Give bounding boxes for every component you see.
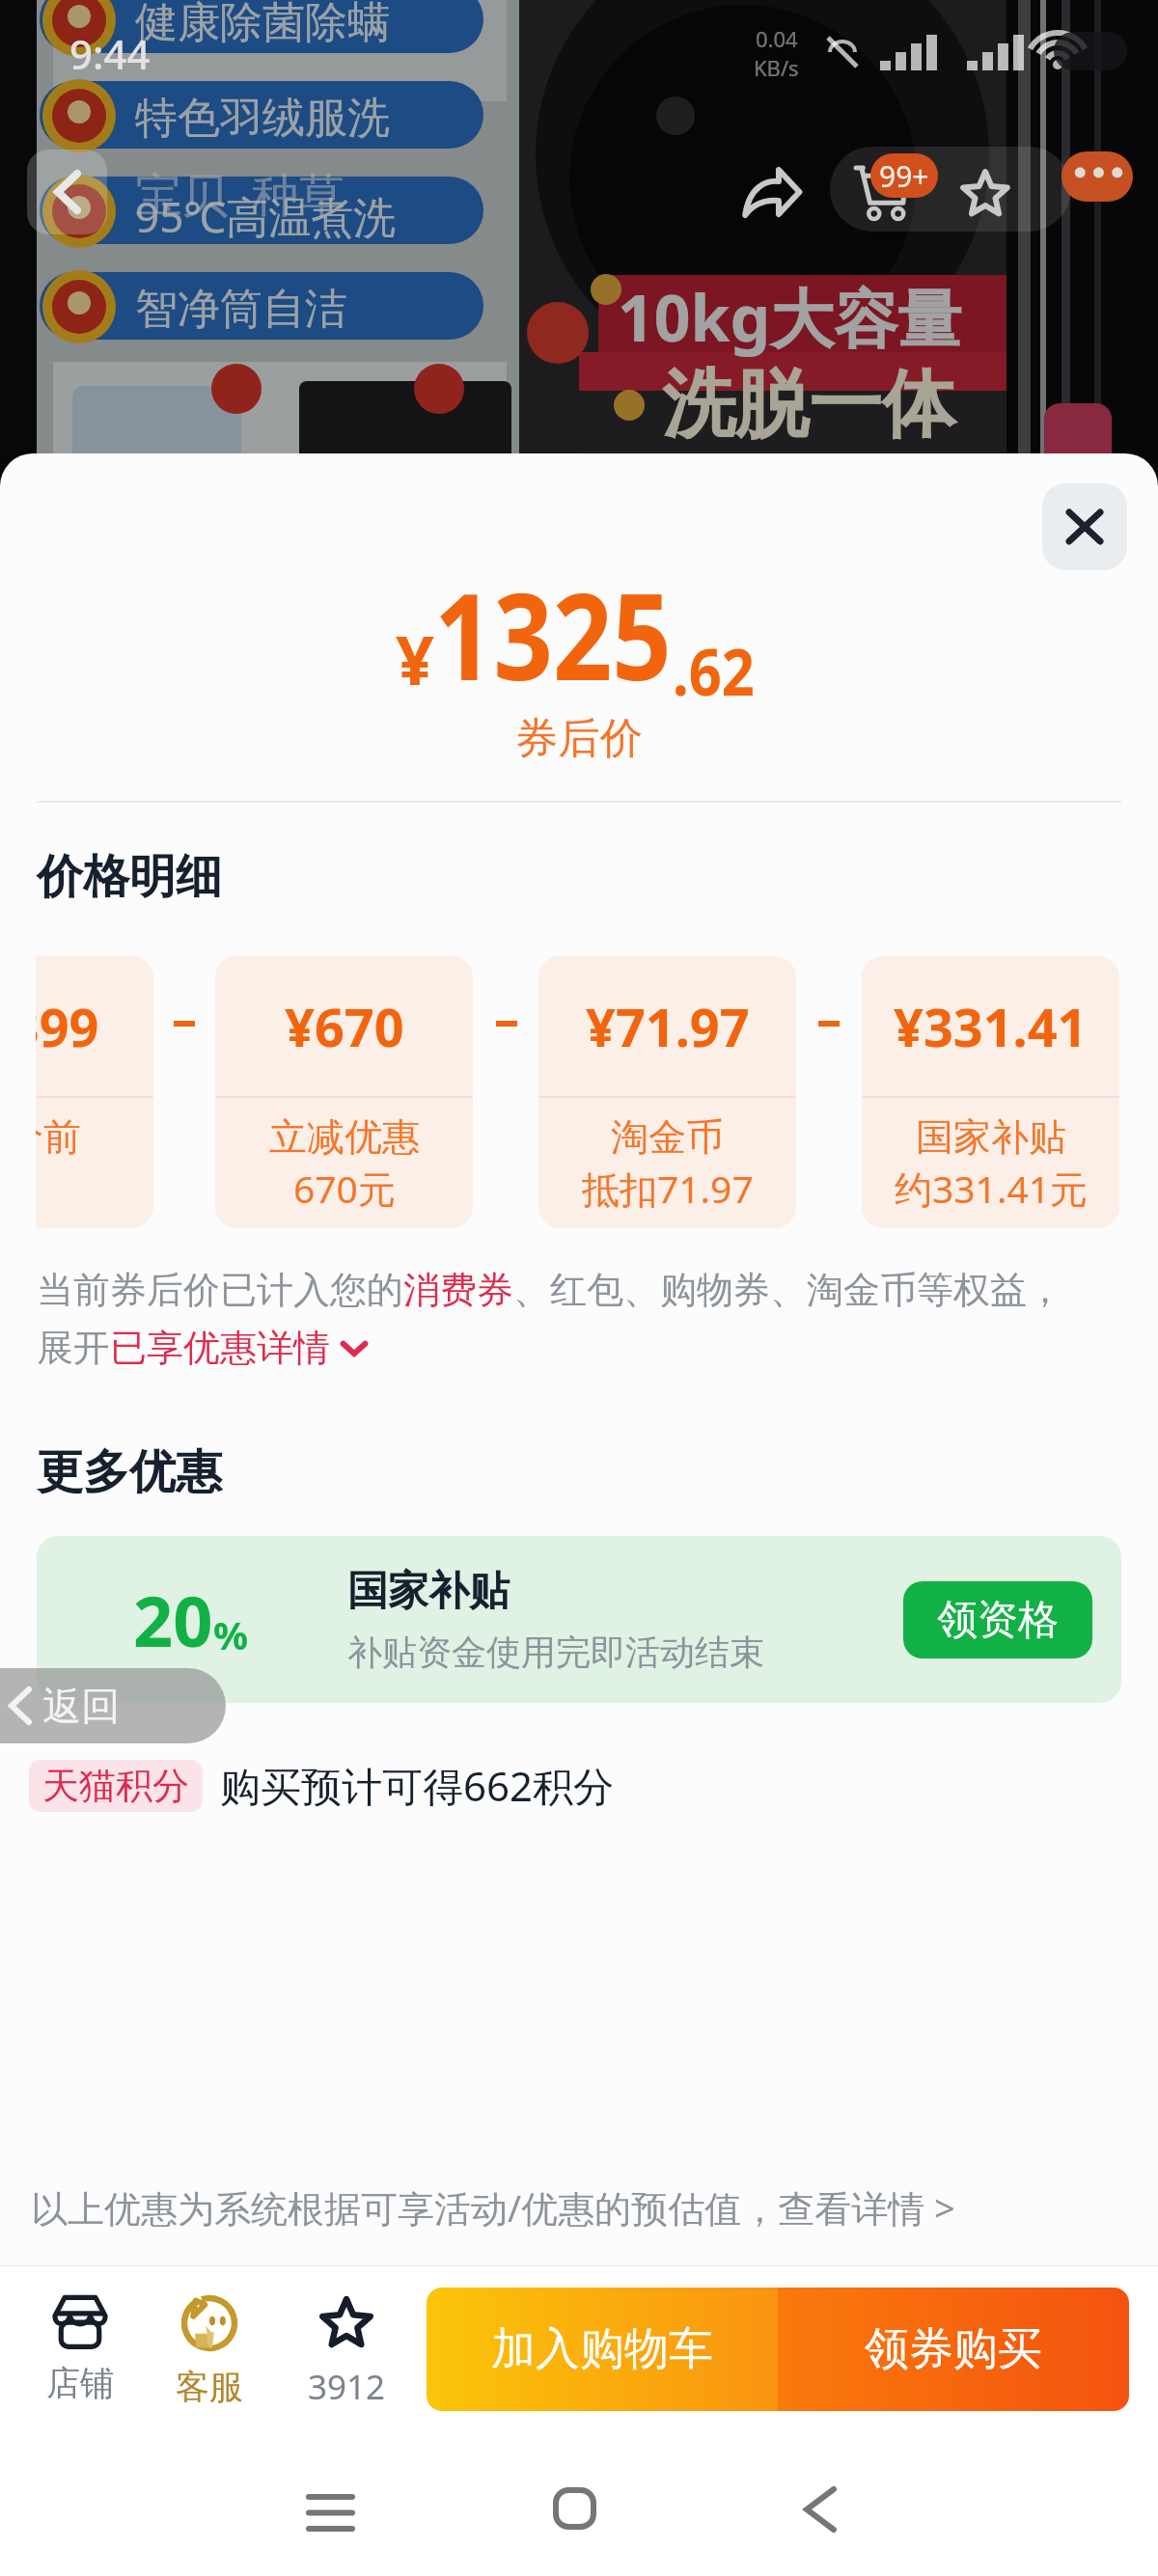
staticText: 洗脱一体 <box>662 359 955 452</box>
staticText: 天猫积分 <box>42 1763 189 1809</box>
button[interactable]: 展开 <box>37 1325 369 1371</box>
staticText: 价格明细 <box>37 848 222 906</box>
button[interactable]: Back <box>27 150 107 234</box>
staticText: 特色羽绒服洗 <box>135 92 390 145</box>
staticText: KB/s <box>754 53 799 82</box>
staticText: 、红包、购物券、淘金币等权益， <box>513 1267 1063 1313</box>
button[interactable]: 20 <box>37 1536 1121 1703</box>
staticText: 更多优惠 <box>37 1443 222 1501</box>
staticText: % <box>213 1608 249 1660</box>
staticText: 670元 <box>293 1163 396 1214</box>
staticText: 当前券后价已计入您的 <box>37 1267 403 1313</box>
staticText: 淘金币 <box>611 1113 724 1161</box>
staticText: 1325 <box>434 552 672 715</box>
button[interactable]: More <box>1061 151 1133 202</box>
staticText: ¥4399 <box>36 991 99 1062</box>
button[interactable]: Back <box>762 2452 878 2567</box>
staticText: 3912 <box>308 2364 386 2410</box>
staticText: 展开 <box>37 1325 110 1371</box>
staticText: 购买预计可得662积分 <box>220 1758 615 1813</box>
staticText: ¥670 <box>285 991 404 1062</box>
staticText: 10kg大容量 <box>618 273 962 360</box>
staticText: 补贴资金使用完即活动结束 <box>347 1631 764 1674</box>
staticText: 客服 <box>176 2366 243 2408</box>
button[interactable]: Cart <box>836 151 924 232</box>
button[interactable]: ¥670 <box>215 956 473 1228</box>
button[interactable]: 客服 <box>146 2266 273 2432</box>
staticText: 9:44 <box>69 26 151 81</box>
staticText: 95℃高温煮洗 <box>135 187 397 245</box>
button[interactable]: 加入购物车 <box>427 2288 778 2411</box>
button[interactable]: Share <box>726 152 818 233</box>
button[interactable]: Home <box>516 2451 632 2566</box>
staticText: 券后价 <box>0 712 1158 765</box>
button[interactable]: 店铺 <box>16 2266 144 2432</box>
staticText: 加入购物车 <box>491 2321 713 2377</box>
staticText: ¥71.97 <box>586 991 750 1062</box>
button[interactable]: Favorite <box>947 154 1024 232</box>
staticText: 约331.41元 <box>895 1163 1088 1214</box>
staticText: 99+ <box>879 156 929 196</box>
staticText: 领资格 <box>937 1595 1059 1646</box>
button[interactable]: ¥331.41 <box>862 956 1119 1228</box>
button[interactable]: 返回 <box>0 1668 226 1743</box>
staticText: 0.04 <box>756 24 798 53</box>
staticText: 领券购买 <box>865 2321 1042 2377</box>
button[interactable]: ¥4399 <box>36 956 153 1228</box>
staticText: ¥ <box>396 613 435 704</box>
staticText: .62 <box>673 627 755 714</box>
button[interactable]: Recents <box>272 2454 388 2570</box>
staticText: 立减优惠 <box>269 1113 420 1161</box>
staticText: 返回 <box>42 1682 120 1730</box>
staticText: 智净筒自洁 <box>135 283 347 336</box>
staticText: 健康除菌除螨 <box>135 0 390 49</box>
button[interactable]: 领券购买 <box>778 2288 1129 2411</box>
staticText: 抵扣71.97 <box>582 1163 754 1214</box>
staticText: 以上优惠为系统根据可享活动/优惠的预估值，查看详情 > <box>31 2182 955 2233</box>
staticText: ¥331.41 <box>894 991 1088 1062</box>
button[interactable]: ¥71.97 <box>538 956 796 1228</box>
staticText: 店铺 <box>46 2362 114 2404</box>
staticText: 原价前 <box>36 1113 81 1161</box>
staticText: 国家补贴 <box>916 1113 1066 1161</box>
staticText: 宝贝 种草 <box>135 162 345 226</box>
staticText: 国家补贴 <box>347 1566 510 1617</box>
button[interactable]: Close <box>1042 483 1127 570</box>
staticText: 已享优惠详情 <box>110 1325 330 1371</box>
button[interactable]: 领资格 <box>903 1581 1092 1658</box>
staticText: 消费券 <box>403 1267 513 1313</box>
button[interactable]: 3912 <box>283 2266 410 2432</box>
staticText: 20 <box>133 1573 213 1667</box>
